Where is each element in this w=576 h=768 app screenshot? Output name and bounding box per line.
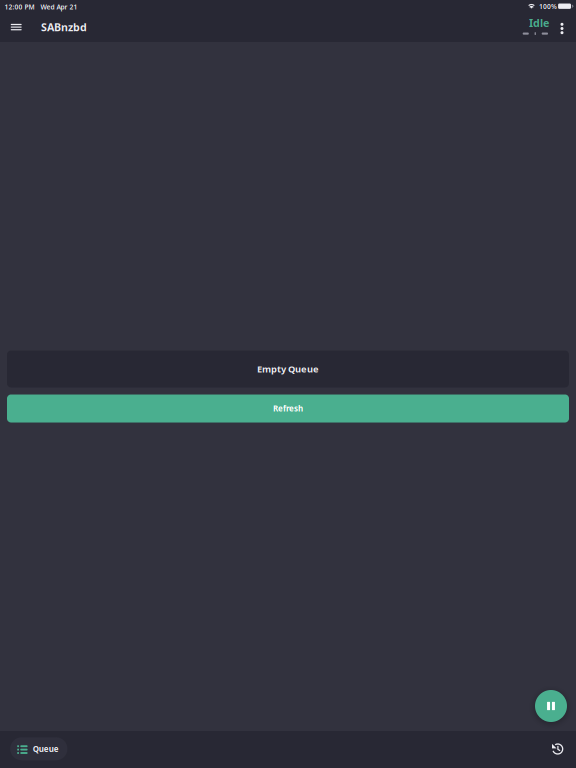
button[interactable]: Queue [10, 737, 67, 760]
button[interactable]: History [546, 737, 570, 761]
staticText: SABnzbd [41, 20, 87, 34]
staticText: Wed Apr 21 [41, 2, 78, 11]
staticText: Empty Queue [257, 363, 319, 375]
staticText: 100% [539, 2, 557, 11]
staticText: Idle [529, 16, 549, 30]
button[interactable]: Menu [2, 14, 30, 41]
button[interactable]: More options [552, 15, 572, 42]
staticText: Refresh [273, 403, 303, 414]
staticText: 12:00 PM [4, 2, 34, 11]
button[interactable]: Pause downloads [535, 690, 567, 722]
button[interactable]: Refresh [7, 394, 569, 422]
staticText: Queue [33, 743, 59, 754]
